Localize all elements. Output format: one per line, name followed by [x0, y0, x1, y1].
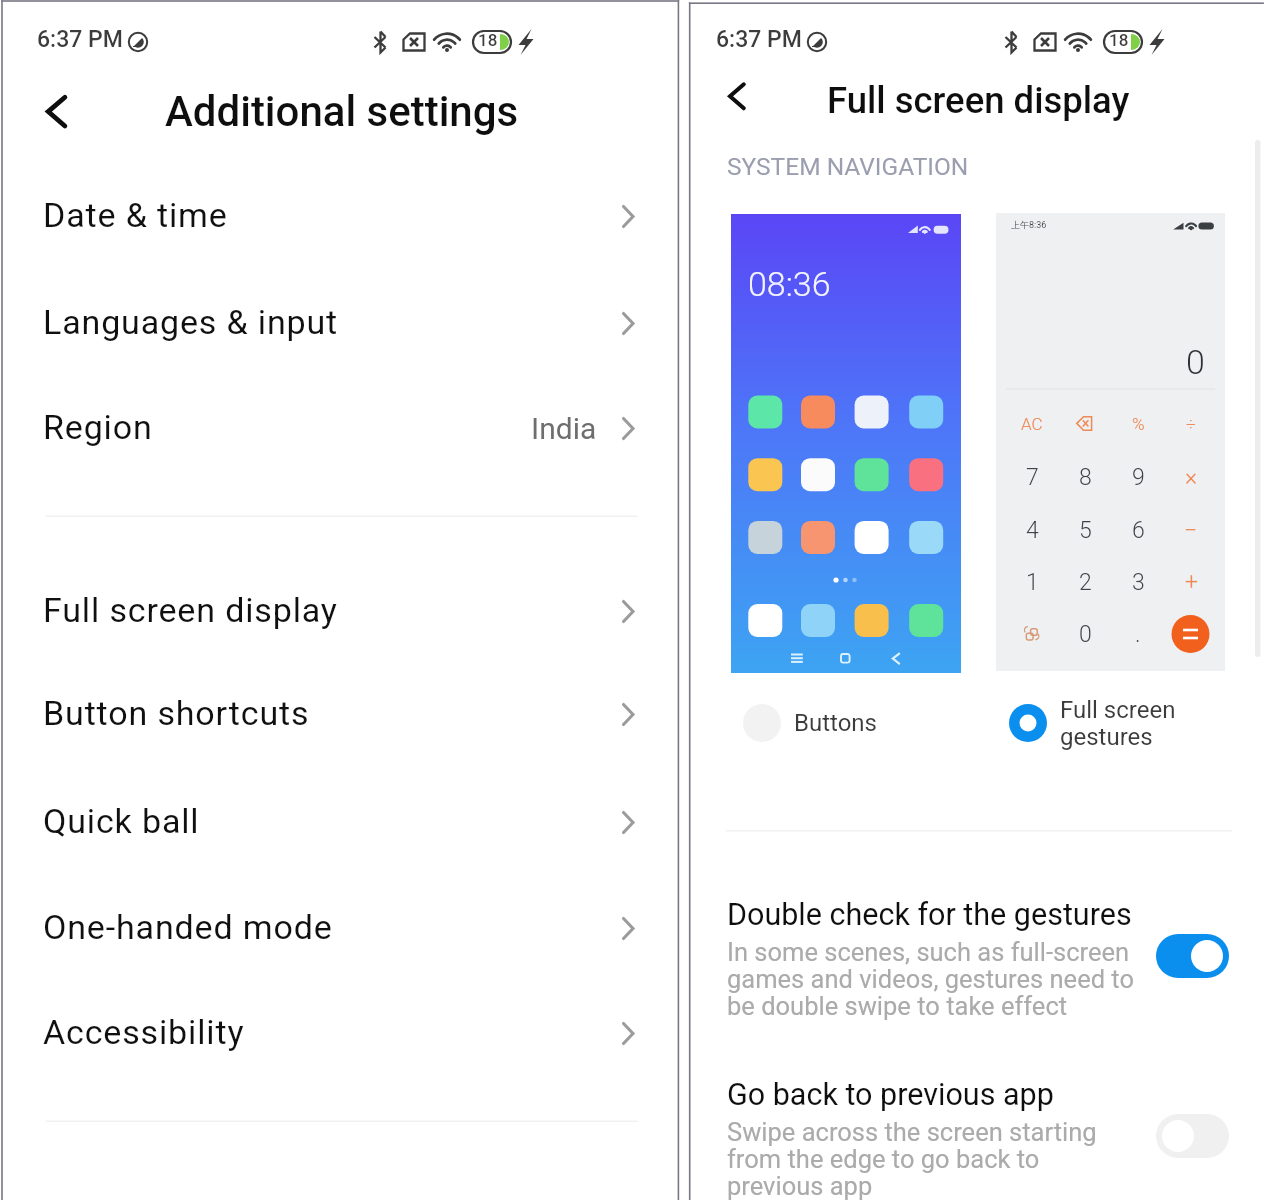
button[interactable]: Full screen gestures — [1009, 694, 1229, 752]
staticText: Additional settings — [165, 87, 519, 136]
staticText: ÷ — [1186, 414, 1196, 434]
staticText: 4 — [1026, 517, 1039, 544]
button[interactable]: Button shortcuts — [2, 665, 678, 770]
staticText: Languages & input — [43, 302, 339, 342]
staticText: Full screen gestures — [1060, 696, 1176, 751]
staticText: 3 — [1132, 569, 1145, 596]
staticText: Full screen display — [43, 590, 338, 630]
staticText: 1 — [1026, 569, 1039, 596]
staticText: − — [1184, 517, 1198, 544]
staticText: Swipe across the screen starting from th… — [727, 1117, 1097, 1200]
button[interactable]: Buttons — [743, 694, 933, 752]
button[interactable]: Region — [2, 379, 678, 484]
staticText: 8 — [1079, 464, 1092, 491]
staticText: 08:36 — [748, 264, 831, 304]
staticText: 18 — [1109, 30, 1129, 50]
button[interactable]: − — [1165, 504, 1217, 556]
staticText: × — [1185, 464, 1198, 491]
staticText: Double check for the gestures — [727, 897, 1132, 933]
button[interactable]: × — [1165, 451, 1217, 503]
button[interactable]: . — [1112, 608, 1164, 660]
staticText: 9 — [1132, 464, 1145, 491]
staticText: Accessibility — [43, 1012, 245, 1052]
button[interactable]: Off — [1156, 1114, 1230, 1158]
staticText: 18 — [478, 30, 498, 50]
button[interactable]: One-handed mode — [2, 879, 678, 984]
staticText: SYSTEM NAVIGATION — [727, 152, 969, 181]
button[interactable]: Double check for the gestures — [690, 897, 1264, 1042]
button[interactable]: Full screen display — [2, 562, 678, 667]
button[interactable]: Languages & input — [2, 274, 678, 379]
staticText: Button shortcuts — [43, 693, 310, 733]
button[interactable]: + — [1165, 556, 1217, 608]
staticText: 6:37 PM — [37, 26, 123, 53]
button[interactable]: 5 — [1059, 504, 1111, 556]
button[interactable]: Quick ball — [2, 773, 678, 878]
staticText: Full screen display — [827, 79, 1130, 122]
staticText: Date & time — [43, 195, 228, 235]
staticText: 5 — [1079, 517, 1092, 544]
button[interactable]: ÷ — [1165, 398, 1217, 450]
staticText: 2 — [1079, 569, 1092, 596]
button[interactable]: 3 — [1112, 556, 1164, 608]
staticText: 上午8:36 — [1011, 219, 1047, 230]
button[interactable]: 2 — [1059, 556, 1111, 608]
button[interactable]: Back — [30, 83, 86, 139]
button[interactable]: 1 — [1006, 556, 1058, 608]
button[interactable]: 6 — [1112, 504, 1164, 556]
button[interactable]: On — [1156, 934, 1230, 978]
staticText: 0 — [1079, 621, 1092, 648]
staticText: Buttons — [794, 709, 877, 737]
staticText: Quick ball — [43, 801, 200, 841]
staticText: + — [1185, 569, 1198, 596]
button[interactable]: 9 — [1112, 451, 1164, 503]
staticText: 6 — [1132, 517, 1145, 544]
staticText: 6:37 PM — [716, 26, 802, 53]
button[interactable]: Back — [700, 77, 756, 133]
staticText: . — [1135, 621, 1141, 648]
staticText: 7 — [1026, 464, 1039, 491]
button[interactable]: AC — [1006, 398, 1058, 450]
staticText: India — [531, 411, 597, 446]
staticText: In some scenes, such as full-screen game… — [727, 937, 1135, 1021]
button[interactable]: 7 — [1006, 451, 1058, 503]
staticText: Region — [43, 407, 153, 447]
button[interactable]: 4 — [1006, 504, 1058, 556]
button[interactable]: Accessibility — [2, 984, 678, 1089]
button[interactable]: Go back to previous app — [690, 1077, 1264, 1200]
staticText: One-handed mode — [43, 907, 333, 947]
button[interactable]: 8 — [1059, 451, 1111, 503]
button[interactable]: % — [1112, 398, 1164, 450]
staticText: 0 — [1186, 342, 1205, 382]
staticText: AC — [1021, 414, 1043, 434]
button[interactable]: 0 — [1059, 608, 1111, 660]
button[interactable]: Date & time — [2, 167, 678, 272]
staticText: Go back to previous app — [727, 1077, 1054, 1113]
staticText: % — [1132, 414, 1145, 434]
